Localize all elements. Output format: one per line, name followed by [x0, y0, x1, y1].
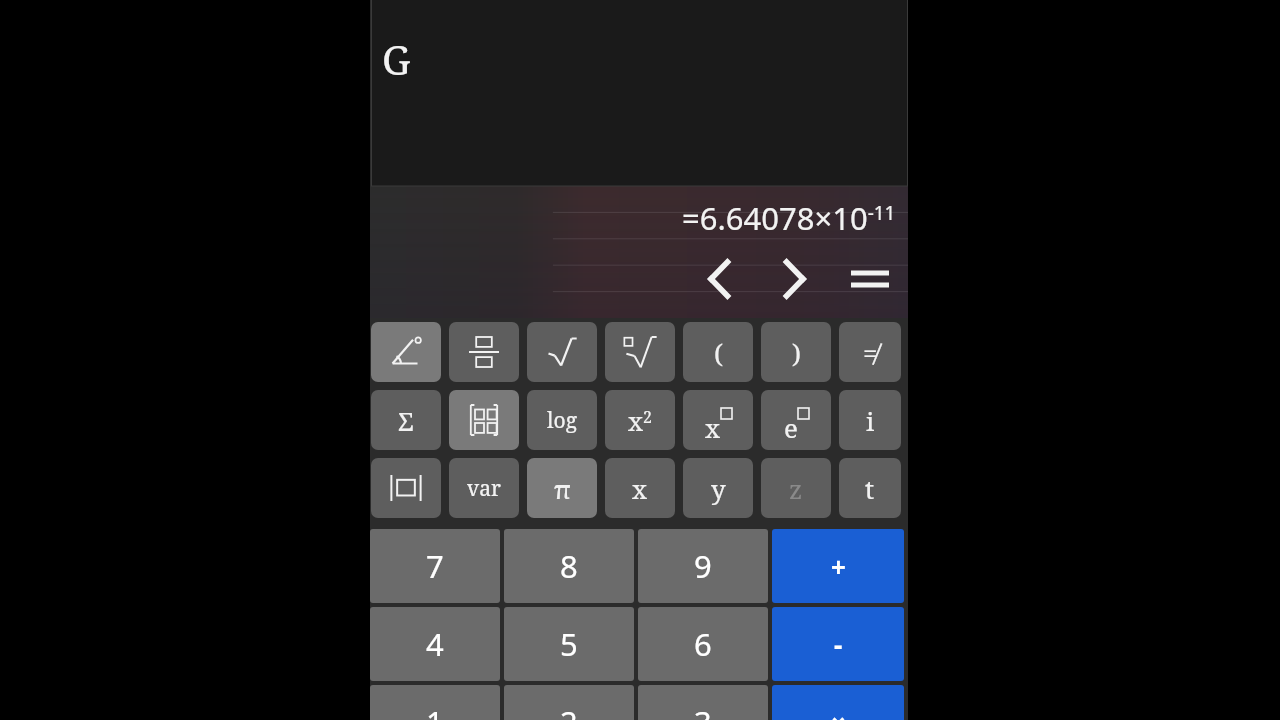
button[interactable]: frac: [449, 322, 519, 382]
staticText: ×: [831, 705, 846, 720]
button[interactable]: sqrt: [527, 322, 597, 382]
button[interactable]: matrix: [449, 390, 519, 450]
button[interactable]: 7: [370, 529, 500, 603]
button[interactable]: 3: [638, 685, 768, 720]
staticText: Σ: [398, 403, 414, 438]
button[interactable]: nroot: [605, 322, 675, 382]
staticText: x2: [628, 403, 652, 438]
staticText: π: [554, 471, 571, 506]
button[interactable]: 4: [370, 607, 500, 681]
button[interactable]: 9: [638, 529, 768, 603]
button[interactable]: -: [772, 607, 904, 681]
staticText: t: [865, 471, 875, 506]
staticText: (: [714, 335, 723, 370]
button[interactable]: eb: [761, 390, 831, 450]
button[interactable]: log: [527, 390, 597, 450]
button[interactable]: y: [683, 458, 753, 518]
button[interactable]: Next: [766, 253, 818, 305]
button[interactable]: x: [605, 458, 675, 518]
staticText: 9: [694, 545, 712, 587]
staticText: ): [792, 335, 801, 370]
staticText: 1: [426, 701, 444, 720]
button[interactable]: 5: [504, 607, 634, 681]
button[interactable]: ): [761, 322, 831, 382]
button[interactable]: Equals: [844, 253, 896, 305]
button[interactable]: ≠: [839, 322, 901, 382]
staticText: +: [831, 549, 846, 584]
button[interactable]: x2: [605, 390, 675, 450]
button[interactable]: i: [839, 390, 901, 450]
button[interactable]: 8: [504, 529, 634, 603]
staticText: ≠: [863, 335, 878, 370]
staticText: G: [382, 32, 411, 86]
staticText: z: [789, 471, 803, 506]
button[interactable]: ×: [772, 685, 904, 720]
staticText: log: [547, 406, 577, 435]
button[interactable]: angle: [371, 322, 441, 382]
staticText: x: [632, 471, 648, 506]
button[interactable]: (: [683, 322, 753, 382]
button[interactable]: 6: [638, 607, 768, 681]
button[interactable]: 1: [370, 685, 500, 720]
button[interactable]: 2: [504, 685, 634, 720]
button[interactable]: =6.64078×10-11: [370, 192, 908, 244]
staticText: x: [705, 410, 721, 445]
staticText: 4: [426, 623, 444, 665]
button[interactable]: Previous: [696, 253, 748, 305]
staticText: 5: [560, 623, 578, 665]
staticText: 8: [560, 545, 578, 587]
button[interactable]: π: [527, 458, 597, 518]
staticText: i: [866, 403, 875, 438]
button[interactable]: Σ: [371, 390, 441, 450]
button[interactable]: z: [761, 458, 831, 518]
staticText: 7: [426, 545, 444, 587]
button[interactable]: t: [839, 458, 901, 518]
button[interactable]: var: [449, 458, 519, 518]
staticText: e: [784, 410, 798, 445]
staticText: 3: [694, 701, 712, 720]
staticText: 2: [560, 701, 578, 720]
button[interactable]: xb: [683, 390, 753, 450]
staticText: =6.64078×10-11: [682, 197, 896, 239]
staticText: var: [467, 474, 501, 503]
staticText: y: [711, 471, 726, 506]
button[interactable]: G: [371, 0, 908, 186]
button[interactable]: abs: [371, 458, 441, 518]
staticText: -: [834, 627, 843, 662]
staticText: 6: [694, 623, 712, 665]
button[interactable]: +: [772, 529, 904, 603]
